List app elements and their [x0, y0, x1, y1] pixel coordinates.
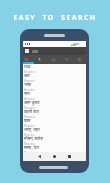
staticText: Meaning [24, 124, 35, 127]
button[interactable]: Bookmark [36, 56, 42, 62]
button[interactable]: Home button [39, 166, 68, 169]
staticText: Meaning [24, 106, 35, 109]
button[interactable]: शब्द [23, 64, 86, 73]
button[interactable]: पहली बात [23, 109, 86, 118]
staticText: शब्द [24, 64, 31, 69]
button[interactable]: अर्थ [23, 73, 86, 82]
button[interactable]: मौसम, बारिश [23, 136, 86, 145]
staticText: भाषा [24, 82, 32, 87]
staticText: Meaning [24, 79, 35, 82]
staticText: आम चुनाव [24, 100, 40, 105]
button[interactable]: History [50, 56, 56, 62]
button[interactable]: Recents [66, 153, 73, 160]
staticText: Meaning [24, 142, 35, 145]
staticText: समय, दिन [24, 145, 39, 150]
button[interactable] [23, 47, 86, 55]
staticText: Meaning [24, 70, 35, 73]
staticText: जगह, शहर [24, 127, 40, 132]
staticText: EASY TO SEARCH [13, 13, 97, 23]
staticText: Meaning [24, 115, 35, 118]
button[interactable]: काम [23, 118, 86, 127]
button[interactable]: समय, दिन [23, 145, 86, 152]
staticText: मौसम, बारिश [24, 136, 44, 141]
button[interactable]: Home [51, 153, 58, 160]
button[interactable]: Share [63, 56, 69, 62]
button[interactable]: Search [23, 56, 29, 62]
button[interactable]: Back [36, 153, 43, 160]
staticText: अर्थ [24, 73, 30, 78]
button[interactable]: जगह, शहर [23, 127, 86, 136]
staticText: नाम [24, 91, 30, 96]
button[interactable]: नाम [23, 91, 86, 100]
staticText: Meaning [24, 88, 35, 91]
staticText: Meaning [24, 97, 35, 100]
staticText: Meaning [24, 151, 35, 152]
staticText: काम [24, 118, 31, 123]
button[interactable]: Settings [76, 56, 82, 62]
button[interactable]: भाषा [23, 82, 86, 91]
staticText: Meaning [24, 133, 35, 136]
staticText: पहली बात [24, 109, 39, 114]
button[interactable]: आम चुनाव [23, 100, 86, 109]
